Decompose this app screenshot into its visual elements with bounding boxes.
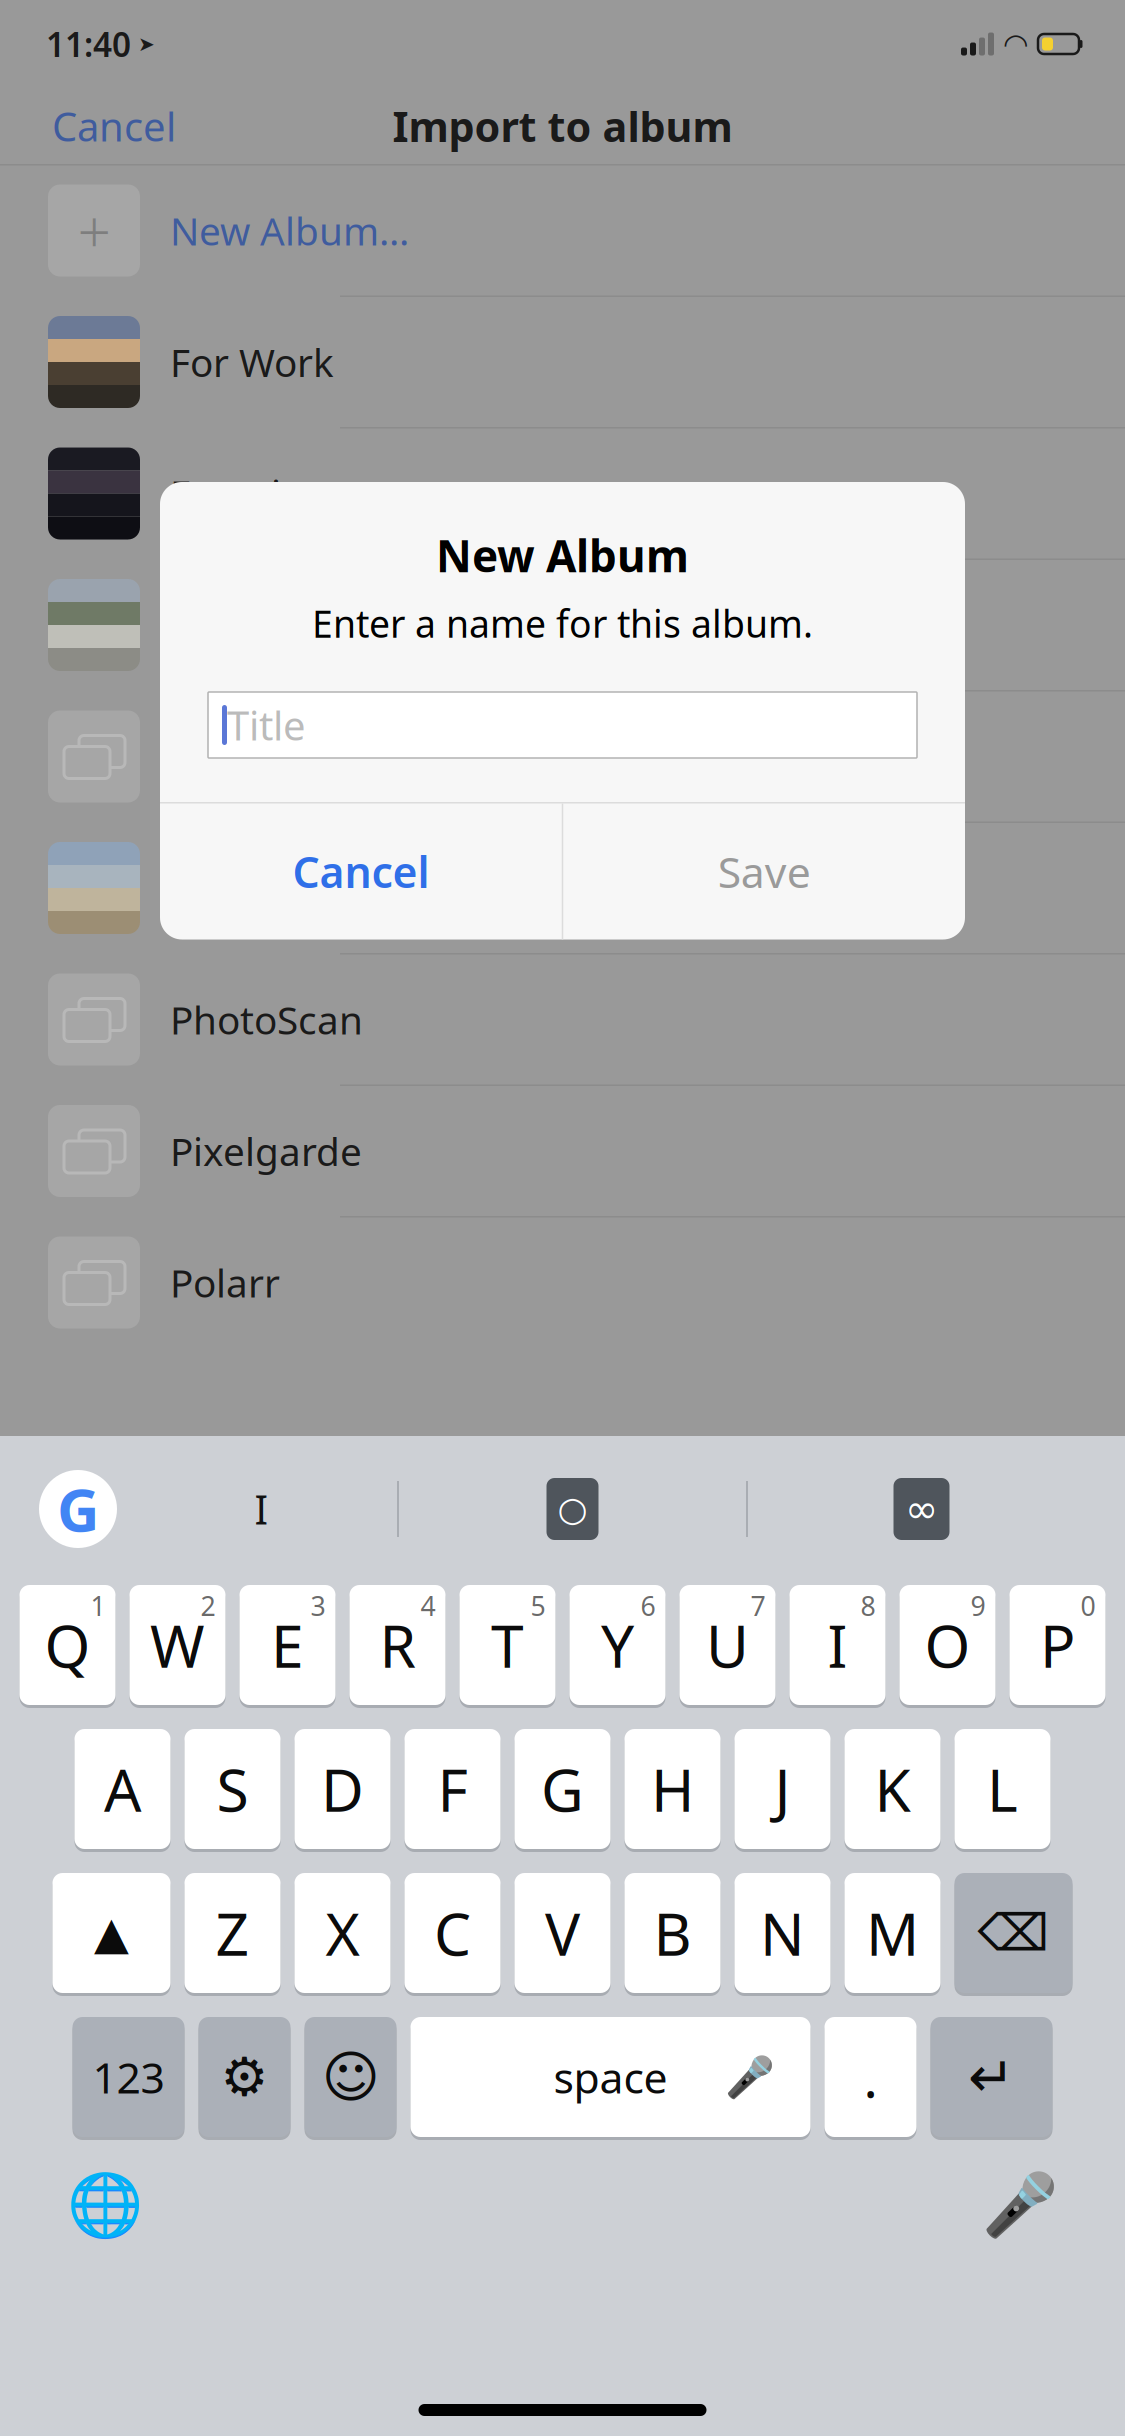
staticText: Z xyxy=(215,1894,249,1972)
button[interactable]: Instagram xyxy=(0,691,1125,823)
button[interactable]: U xyxy=(679,1582,775,1708)
staticText: Cancel xyxy=(292,843,429,900)
staticText: ∞ xyxy=(905,1486,938,1532)
staticText: New Album xyxy=(436,526,689,584)
staticText: Title xyxy=(227,698,306,751)
button[interactable]: Switch keyboard xyxy=(50,2160,160,2250)
staticText: U xyxy=(706,1606,749,1684)
staticText: L xyxy=(987,1750,1018,1828)
staticText: Polarr xyxy=(170,1257,280,1308)
staticText: . xyxy=(863,2042,877,2112)
staticText: + xyxy=(77,191,110,269)
button[interactable]: A xyxy=(74,1726,170,1852)
button[interactable]: Z xyxy=(184,1870,280,1996)
staticText: 🎤 xyxy=(982,2170,1058,2240)
button[interactable]: J xyxy=(734,1726,830,1852)
button[interactable]: For Work xyxy=(0,297,1125,428)
button[interactable]: Q xyxy=(19,1582,115,1708)
button[interactable]: Y xyxy=(569,1582,665,1708)
staticText: ○ xyxy=(557,1489,587,1529)
staticText: 8 xyxy=(860,1588,875,1623)
button[interactable]: Return xyxy=(930,2014,1052,2140)
button[interactable]: Skate xyxy=(0,560,1125,691)
staticText: H xyxy=(651,1750,694,1828)
staticText: ⚙ xyxy=(220,2047,268,2107)
staticText: ➤ xyxy=(138,33,155,55)
staticText: S xyxy=(216,1750,248,1828)
button[interactable]: H xyxy=(624,1726,720,1852)
staticText: D xyxy=(321,1750,364,1828)
staticText: Favorites xyxy=(170,468,336,519)
staticText: 6 xyxy=(640,1588,655,1623)
button[interactable]: space xyxy=(410,2014,810,2140)
button[interactable]: Google Search xyxy=(30,1461,126,1557)
button[interactable]: T xyxy=(459,1582,555,1708)
button[interactable]: G xyxy=(514,1726,610,1852)
button[interactable]: Cancel xyxy=(160,803,562,939)
button[interactable]: Pixelgarde xyxy=(0,1086,1125,1217)
staticText: 0 xyxy=(1080,1588,1095,1623)
staticText: ▲ xyxy=(94,1907,129,1959)
staticText: Nature xyxy=(170,862,296,914)
button[interactable]: Favorites xyxy=(0,428,1125,560)
button[interactable]: X xyxy=(294,1870,390,1996)
staticText: Enter a name for this album. xyxy=(312,598,813,648)
button[interactable]: V xyxy=(514,1870,610,1996)
button[interactable]: O xyxy=(899,1582,995,1708)
staticText: E xyxy=(271,1606,304,1684)
staticText: 9 xyxy=(970,1588,985,1623)
button[interactable]: Emoji xyxy=(304,2014,396,2140)
button[interactable]: Cancel xyxy=(36,89,192,162)
button[interactable]: PhotoScan xyxy=(0,954,1125,1086)
button[interactable]: Sticker search xyxy=(527,1464,617,1554)
staticText: A xyxy=(104,1750,141,1828)
staticText: P xyxy=(1040,1606,1075,1684)
staticText: ⌫ xyxy=(977,1904,1049,1962)
staticText: I xyxy=(827,1606,847,1684)
button[interactable]: Settings xyxy=(198,2014,290,2140)
button[interactable]: M xyxy=(844,1870,940,1996)
button[interactable]: Save xyxy=(563,803,965,939)
button[interactable]: Voice input xyxy=(965,2160,1075,2250)
button[interactable]: C xyxy=(404,1870,500,1996)
staticText: J xyxy=(774,1750,790,1828)
button[interactable]: 123 xyxy=(72,2014,184,2140)
button[interactable]: L xyxy=(954,1726,1050,1852)
staticText: T xyxy=(491,1606,524,1684)
staticText: Y xyxy=(601,1606,634,1684)
staticText: Cancel xyxy=(52,99,176,152)
staticText: 1 xyxy=(90,1588,105,1623)
button[interactable]: R xyxy=(349,1582,445,1708)
button[interactable]: Nature xyxy=(0,823,1125,954)
button[interactable]: P xyxy=(1009,1582,1105,1708)
staticText: For Work xyxy=(170,336,334,388)
staticText: 4 xyxy=(420,1588,435,1623)
staticText: G xyxy=(57,1470,99,1548)
button[interactable]: + xyxy=(0,165,1125,297)
staticText: 5 xyxy=(530,1588,545,1623)
button[interactable]: Shift xyxy=(52,1870,170,1996)
staticText: V xyxy=(545,1894,580,1972)
staticText: Q xyxy=(44,1606,90,1684)
button[interactable]: Backspace xyxy=(954,1870,1072,1996)
button[interactable]: D xyxy=(294,1726,390,1852)
staticText: space xyxy=(553,2049,667,2105)
button[interactable]: F xyxy=(404,1726,500,1852)
staticText: I xyxy=(254,1482,268,1535)
button[interactable]: Period xyxy=(824,2014,916,2140)
button[interactable]: K xyxy=(844,1726,940,1852)
staticText: R xyxy=(379,1606,415,1684)
button[interactable]: N xyxy=(734,1870,830,1996)
button[interactable]: GIF xyxy=(876,1464,966,1554)
button[interactable]: Polarr xyxy=(0,1217,1125,1347)
button[interactable]: S xyxy=(184,1726,280,1852)
button[interactable]: B xyxy=(624,1870,720,1996)
staticText: 7 xyxy=(750,1588,765,1623)
button[interactable]: E xyxy=(239,1582,335,1708)
staticText: G xyxy=(541,1750,584,1828)
staticText: Save xyxy=(718,843,811,900)
button[interactable]: W xyxy=(129,1582,225,1708)
button[interactable]: I xyxy=(789,1582,885,1708)
staticText: W xyxy=(150,1606,205,1684)
staticText: 3 xyxy=(310,1588,325,1623)
